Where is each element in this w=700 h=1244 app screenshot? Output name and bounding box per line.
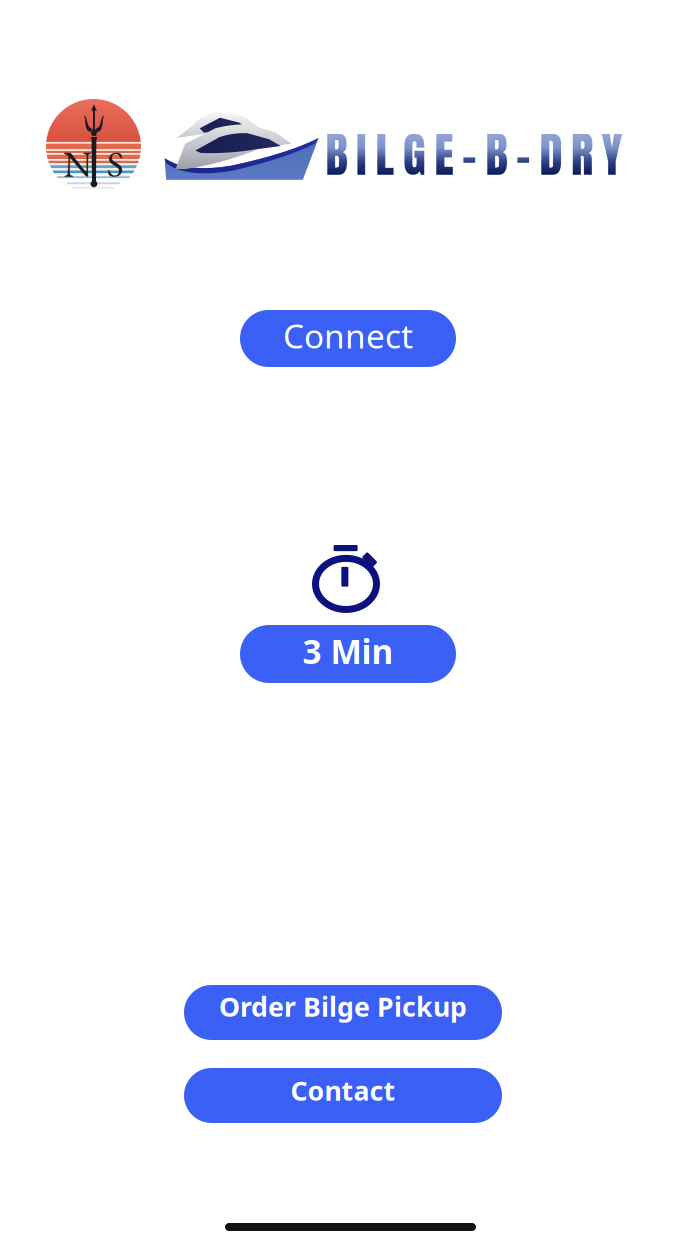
button[interactable]: 3 Min <box>240 625 456 683</box>
button[interactable]: Order Bilge Pickup <box>184 985 502 1040</box>
button[interactable]: Connect <box>240 310 456 367</box>
staticText: Order Bilge Pickup <box>219 989 467 1024</box>
staticText: S <box>107 140 124 188</box>
staticText: 3 Min <box>302 629 393 673</box>
staticText: Contact <box>290 1073 395 1108</box>
button[interactable]: Contact <box>184 1068 502 1123</box>
staticText: Connect <box>283 313 413 358</box>
staticText: N <box>63 140 92 188</box>
